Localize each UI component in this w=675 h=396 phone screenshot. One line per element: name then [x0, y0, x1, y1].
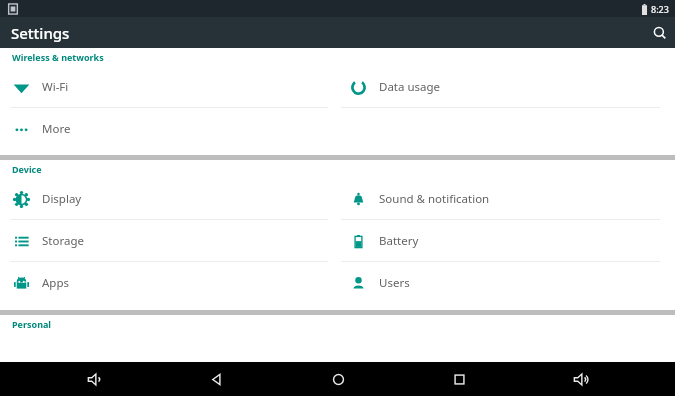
staticText: Apps: [42, 275, 70, 291]
button[interactable]: Back: [189, 362, 243, 396]
staticText: Settings: [11, 23, 70, 43]
button[interactable]: Wi-Fi: [0, 66, 337, 108]
button[interactable]: Sound & notification: [337, 178, 675, 220]
staticText: Battery: [379, 233, 419, 249]
staticText: Wi-Fi: [42, 79, 69, 95]
staticText: Personal: [12, 318, 52, 330]
staticText: Data usage: [379, 79, 441, 95]
button[interactable]: Home: [311, 362, 365, 396]
button[interactable]: Apps: [0, 262, 337, 304]
button[interactable]: More: [0, 108, 337, 150]
button[interactable]: Users: [337, 262, 675, 304]
staticText: Wireless & networks: [12, 51, 104, 63]
staticText: 8:23: [651, 3, 669, 15]
button[interactable]: Recents: [432, 362, 486, 396]
button[interactable]: Data usage: [337, 66, 675, 108]
staticText: Storage: [42, 233, 84, 249]
button[interactable]: Battery: [337, 220, 675, 262]
button[interactable]: Display: [0, 178, 337, 220]
button[interactable]: Volume down: [68, 362, 122, 396]
staticText: Users: [379, 275, 410, 291]
staticText: Sound & notification: [379, 191, 490, 207]
button[interactable]: Search: [644, 17, 675, 48]
staticText: Display: [42, 191, 82, 207]
staticText: More: [42, 121, 71, 137]
staticText: Device: [12, 163, 42, 175]
button[interactable]: Volume up: [554, 362, 608, 396]
button[interactable]: Storage: [0, 220, 337, 262]
